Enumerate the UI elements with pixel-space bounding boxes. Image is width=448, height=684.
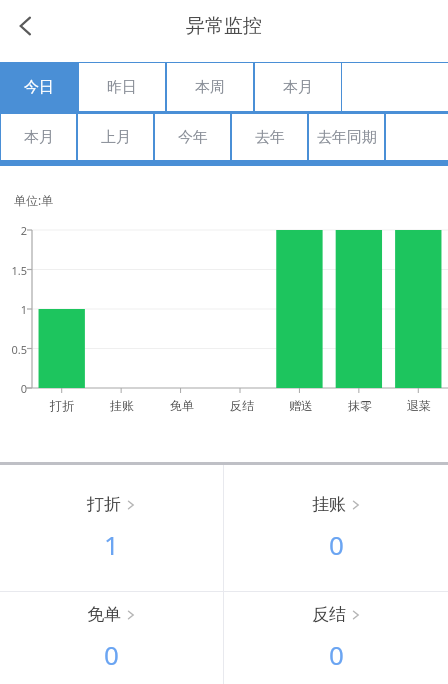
button[interactable]: 上月 [78, 114, 153, 160]
staticText: 异常监控 [186, 14, 262, 38]
staticText: 今日 [24, 78, 54, 97]
staticText: 昨日 [107, 78, 137, 97]
staticText: 1 [20, 302, 27, 317]
button[interactable]: 昨日 [79, 63, 165, 111]
staticText: 退菜 [407, 398, 431, 413]
staticText: 本周 [195, 78, 225, 97]
button[interactable]: 反结 [224, 592, 448, 684]
staticText: 免单 [87, 604, 121, 625]
staticText: 挂账 [110, 398, 134, 413]
staticText: 挂账 [312, 494, 346, 515]
staticText: 今年 [178, 128, 208, 147]
button[interactable]: 今年 [155, 114, 230, 160]
button[interactable]: 挂账 [224, 465, 448, 591]
staticText: 1.5 [11, 263, 27, 278]
staticText: 0 [20, 381, 27, 396]
staticText: 0 [329, 527, 344, 562]
staticText: 0 [329, 637, 344, 672]
button[interactable]: 本月 [255, 63, 341, 111]
staticText: 0 [104, 637, 119, 672]
button[interactable]: 免单 [0, 592, 223, 684]
staticText: 单位:单 [14, 192, 54, 208]
staticText: 本月 [283, 78, 313, 97]
staticText: 1 [104, 527, 119, 562]
staticText: 去年同期 [317, 128, 377, 147]
button[interactable]: 去年同期 [309, 114, 384, 160]
staticText: 赠送 [289, 398, 313, 413]
staticText: 反结 [312, 604, 346, 625]
button[interactable]: 今日 [0, 62, 77, 112]
staticText: 2 [20, 223, 27, 238]
staticText: 打折 [50, 398, 74, 413]
staticText: 打折 [87, 494, 121, 515]
staticText: 抹零 [348, 398, 372, 413]
staticText: 本月 [24, 128, 54, 147]
staticText: 去年 [255, 128, 285, 147]
button[interactable]: 打折 [0, 465, 223, 591]
staticText: 免单 [170, 398, 194, 413]
staticText: 反结 [230, 398, 254, 413]
button[interactable]: 本周 [167, 63, 253, 111]
button[interactable]: 本月 [1, 114, 76, 160]
button[interactable]: Back [4, 4, 48, 48]
staticText: 上月 [101, 128, 131, 147]
staticText: 0.5 [11, 342, 27, 357]
button[interactable]: 去年 [232, 114, 307, 160]
